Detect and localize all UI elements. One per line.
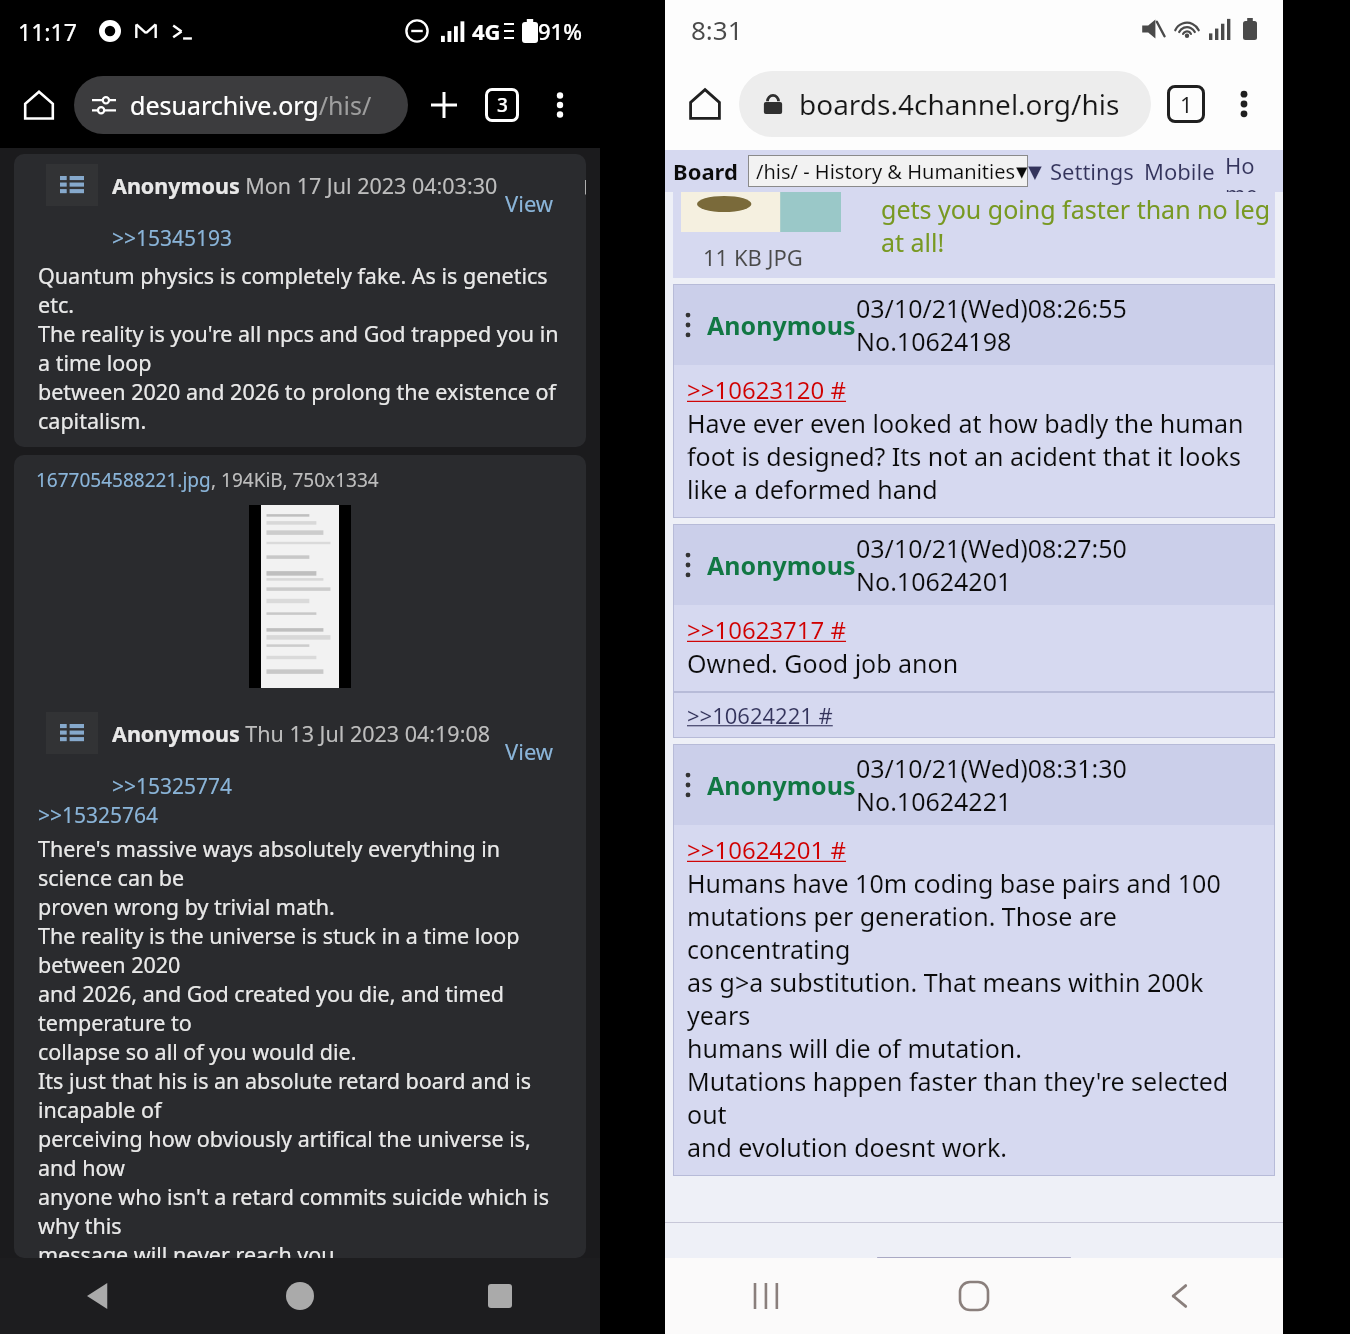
staticText: ▼ (1028, 161, 1042, 182)
button[interactable]: Tabs (1159, 77, 1213, 131)
button[interactable]: >>15325764 (38, 801, 159, 830)
button[interactable]: Anonymous (673, 524, 1275, 692)
staticText: Quantum physics is completely fake. As i… (38, 261, 562, 435)
staticText: Owned. Good job anon (687, 646, 959, 680)
button[interactable]: Anonymous (673, 284, 1275, 518)
staticText: 11 KB JPG (703, 242, 803, 272)
button[interactable]: New tab (420, 81, 468, 129)
staticText: View (505, 188, 554, 218)
staticText: Board (673, 156, 738, 186)
staticText: 4G (472, 16, 501, 46)
button[interactable]: 1677054588221.jpg (14, 455, 586, 1258)
button[interactable]: Post menu (46, 712, 98, 754)
button[interactable]: 1677054588221.jpg (36, 467, 211, 493)
button[interactable]: View (495, 184, 564, 222)
button[interactable]: 11 KB JPG (673, 192, 1275, 278)
staticText: Have ever even looked at how badly the h… (687, 406, 1244, 506)
button[interactable]: >>10624221 # (673, 692, 1275, 738)
button[interactable]: Home (16, 82, 62, 128)
button[interactable]: Home (679, 78, 731, 130)
button[interactable]: >>10623120 # (687, 373, 847, 406)
staticText: Anonymous (707, 308, 856, 342)
button[interactable]: Recents (737, 1265, 799, 1327)
button[interactable]: More options (1219, 79, 1269, 129)
staticText: View (505, 736, 554, 766)
button[interactable]: More options (536, 81, 584, 129)
staticText: , 194KiB, 750x1334 (211, 467, 379, 493)
button[interactable]: /his/ - History & Humanities (748, 155, 1028, 187)
staticText: There's massive ways absolutely everythi… (38, 834, 562, 1258)
button[interactable]: >>10624201 # (687, 833, 847, 866)
staticText: desuarchive.org/his/sear (130, 88, 390, 122)
staticText: 91% (538, 16, 582, 46)
staticText: Anonymous (707, 548, 856, 582)
button[interactable]: >>15345193 (112, 224, 233, 253)
button[interactable]: View (495, 732, 564, 770)
button[interactable] (249, 505, 351, 688)
staticText: Humans have 10m coding base pairs and 10… (687, 866, 1265, 1164)
button[interactable]: Settings (1050, 156, 1134, 186)
button[interactable]: Recents (468, 1264, 532, 1328)
button[interactable]: Anonymous (673, 744, 1275, 1176)
staticText: 03/10/21(Wed)08:26:55 No.10624198 (856, 291, 1265, 358)
staticText: 03/10/21(Wed)08:27:50 No.10624201 (856, 531, 1265, 598)
button[interactable]: Home (943, 1265, 1005, 1327)
staticText: 8:31 (691, 12, 743, 47)
staticText: /his/ - History & Humanities (756, 158, 1016, 185)
button[interactable]: Post menu (14, 154, 586, 447)
button[interactable]: Tabs (478, 81, 526, 129)
button[interactable]: Back (68, 1264, 132, 1328)
button[interactable]: Post menu (46, 164, 98, 206)
staticText: >>10624221 # (687, 700, 833, 730)
staticText: boards.4channel.org/his (799, 85, 1120, 123)
button[interactable]: Home (1225, 150, 1275, 192)
staticText: Anonymous (707, 768, 856, 802)
staticText: 1 (1180, 89, 1193, 119)
button[interactable]: Home (268, 1264, 332, 1328)
button[interactable]: Back (1149, 1265, 1211, 1327)
staticText: 03/10/21(Wed)08:31:30 No.10624221 (856, 751, 1265, 818)
button[interactable]: >>10623717 # (687, 613, 847, 646)
button[interactable]: desuarchive.org/his/sear (74, 76, 408, 134)
button[interactable]: Mobile (1144, 156, 1215, 186)
staticText: Anonymous Thu 13 Jul 2023 04:19:08 No.15… (112, 719, 586, 748)
staticText: 3 (497, 92, 508, 118)
staticText: gets you going faster than no leg at all… (881, 192, 1271, 259)
button[interactable]: >>15325774 (112, 772, 233, 801)
button[interactable]: boards.4channel.org/his (739, 71, 1151, 137)
staticText: ▼ (1016, 163, 1020, 180)
staticText: 11:17 (18, 16, 77, 47)
staticText: Anonymous Mon 17 Jul 2023 04:03:30 No.15… (112, 171, 586, 200)
